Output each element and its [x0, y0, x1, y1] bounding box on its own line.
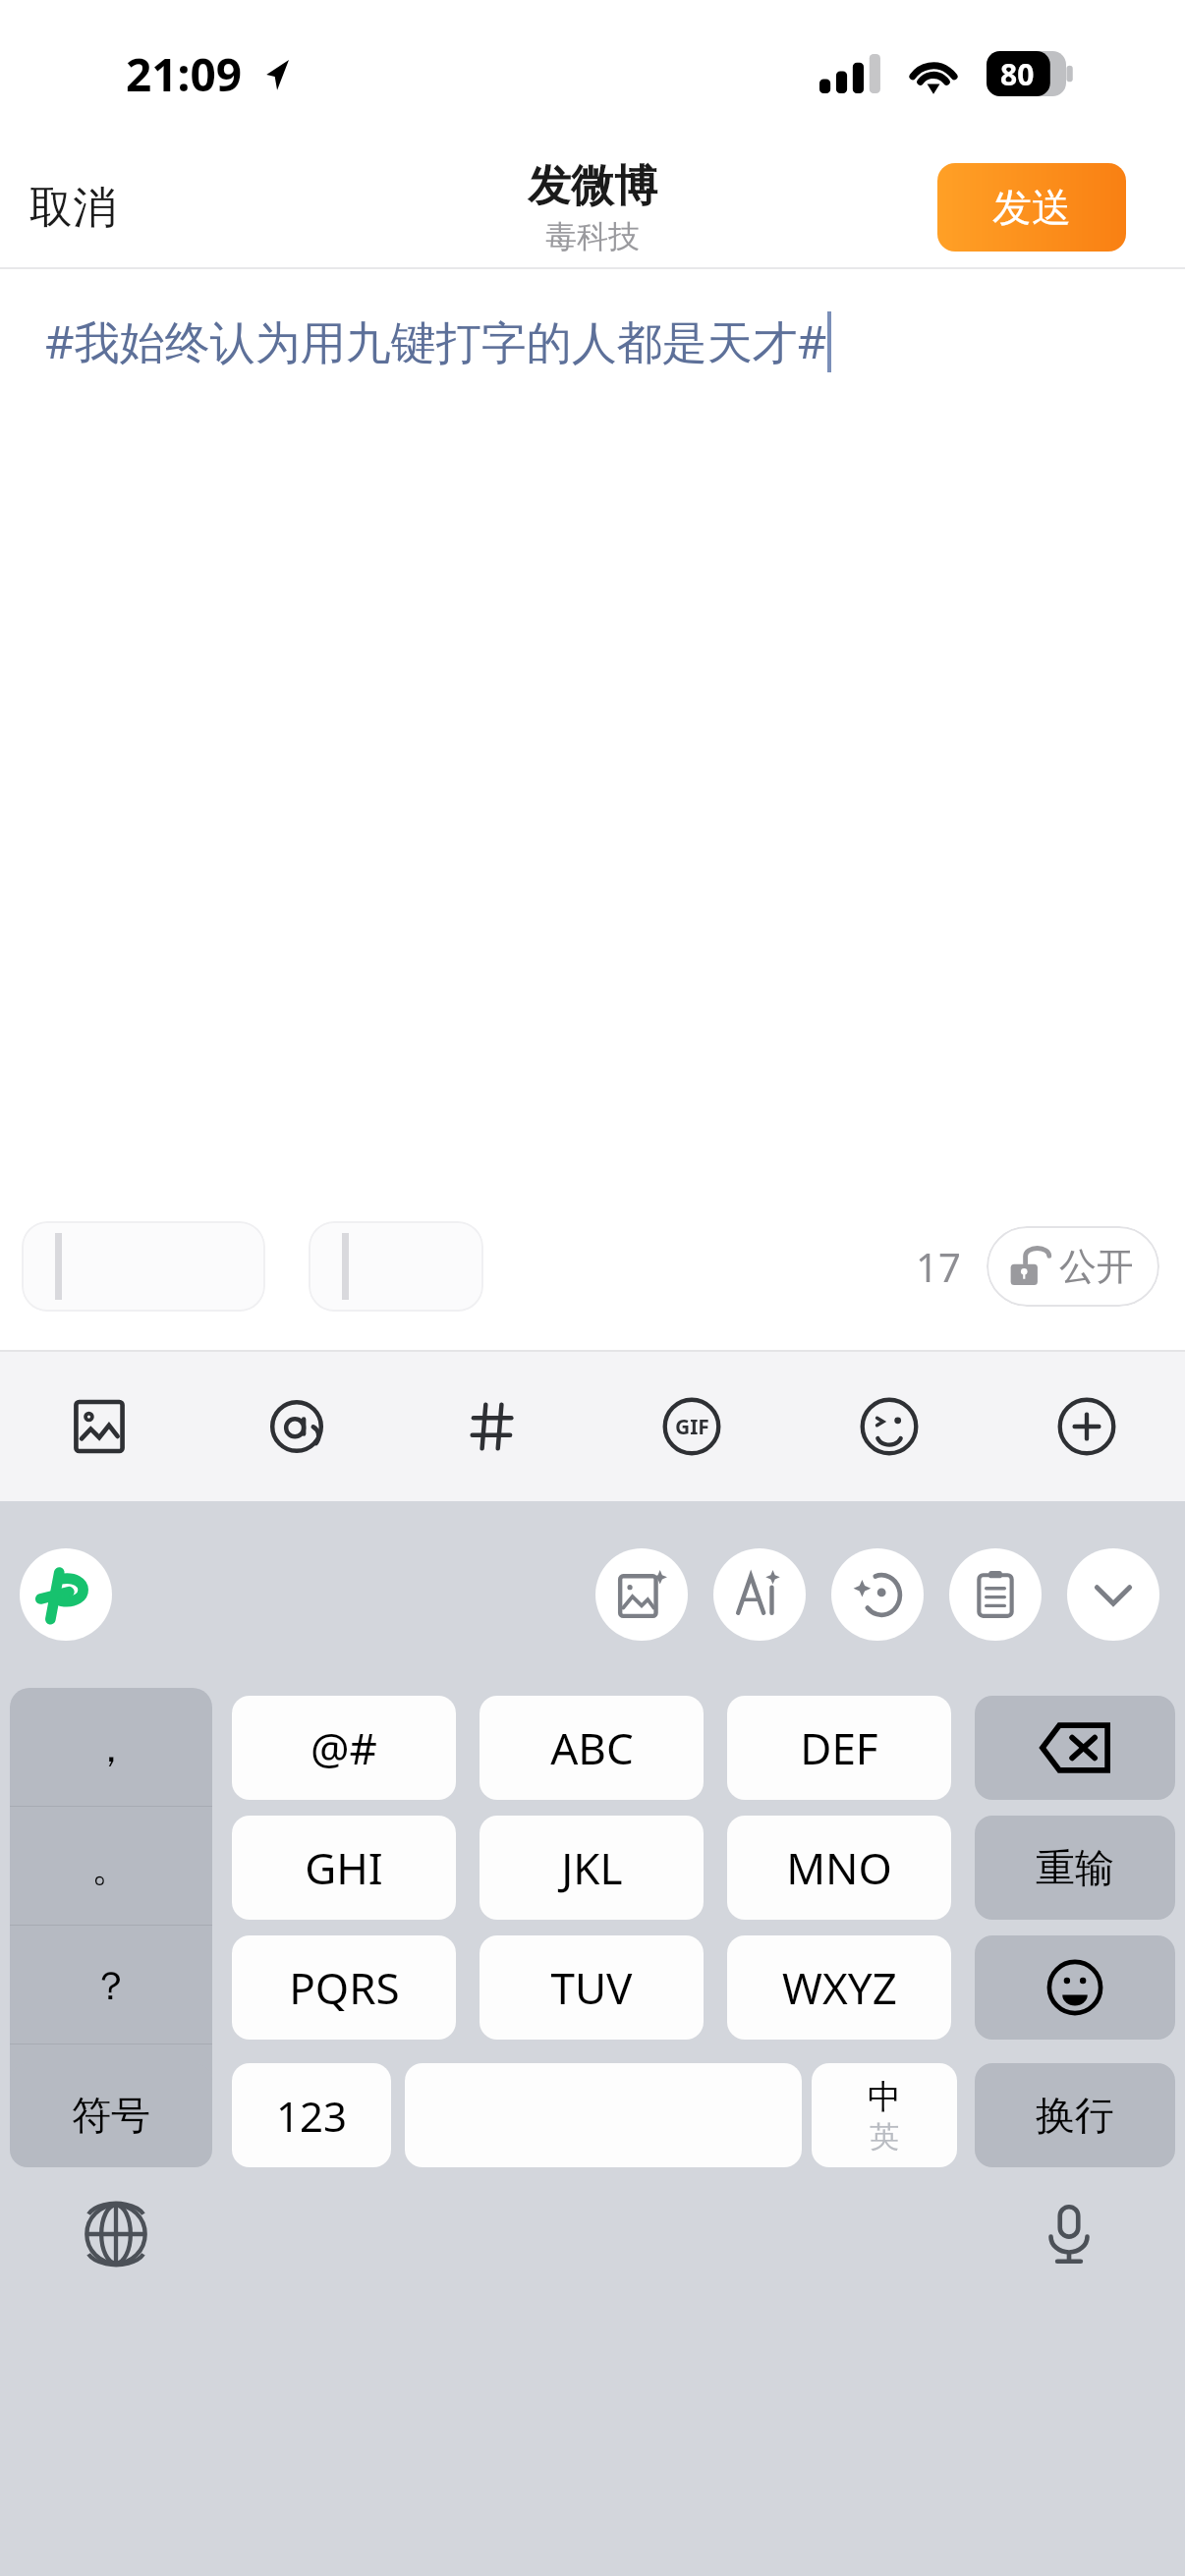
- staticText: 。: [91, 1842, 131, 1891]
- staticText: DEF: [800, 1718, 878, 1777]
- button[interactable]: Space: [405, 2063, 802, 2167]
- button[interactable]: Text AI: [713, 1548, 806, 1641]
- staticText: WXYZ: [782, 1958, 897, 2017]
- staticText: ，: [91, 1723, 131, 1772]
- button[interactable]: PQRS: [232, 1935, 456, 2040]
- button[interactable]: Avatar: [831, 1548, 924, 1641]
- staticText: GIF: [675, 1413, 709, 1441]
- button[interactable]: 发送: [937, 163, 1126, 252]
- button[interactable]: ？: [10, 1926, 212, 2044]
- staticText: JKL: [561, 1838, 623, 1897]
- button[interactable]: TUV: [480, 1935, 704, 2040]
- button[interactable]: GIF: [592, 1352, 790, 1501]
- button[interactable]: ！: [10, 2044, 212, 2163]
- staticText: 发微博: [528, 159, 657, 213]
- staticText: 80: [1000, 54, 1035, 94]
- button[interactable]: 取消: [0, 167, 140, 249]
- staticText: 换行: [1036, 2091, 1114, 2140]
- button[interactable]: ABC: [480, 1696, 704, 1800]
- staticText: 发送: [992, 183, 1071, 232]
- button[interactable]: 公开: [987, 1226, 1159, 1307]
- staticText: 毒科技: [545, 217, 640, 256]
- button[interactable]: 换行: [975, 2063, 1175, 2167]
- button[interactable]: Collapse keyboard: [1067, 1548, 1159, 1641]
- button[interactable]: Emoji: [975, 1935, 1175, 2040]
- button[interactable]: 。: [10, 1807, 212, 1926]
- button[interactable]: Photo AI: [595, 1548, 688, 1641]
- button[interactable]: DEF: [727, 1696, 951, 1800]
- staticText: #我始终认为用九键打字的人都是天才#: [45, 310, 827, 372]
- staticText: PQRS: [289, 1958, 400, 2017]
- staticText: 123: [276, 2088, 348, 2144]
- button[interactable]: 123: [232, 2063, 391, 2167]
- staticText: @#: [310, 1718, 377, 1777]
- staticText: TUV: [550, 1958, 633, 2017]
- staticText: ABC: [550, 1718, 634, 1777]
- button[interactable]: Switch language: [77, 2195, 155, 2273]
- button[interactable]: Mention: [197, 1352, 395, 1501]
- button[interactable]: Input method logo: [20, 1548, 112, 1641]
- button[interactable]: 符号: [10, 2063, 212, 2167]
- staticText: 取消: [29, 181, 116, 235]
- staticText: 公开: [1059, 1243, 1134, 1290]
- staticText: GHI: [305, 1838, 383, 1897]
- staticText: 重输: [1036, 1843, 1114, 1892]
- button[interactable]: Emoji: [790, 1352, 987, 1501]
- button[interactable]: 重输: [975, 1816, 1175, 1920]
- staticText: 17: [916, 1240, 961, 1293]
- button[interactable]: ，: [10, 1688, 212, 1807]
- button[interactable]: More: [987, 1352, 1185, 1501]
- button[interactable]: Topic: [395, 1352, 592, 1501]
- staticText: MNO: [786, 1838, 892, 1897]
- staticText: 英: [870, 2118, 899, 2156]
- button[interactable]: @#: [232, 1696, 456, 1800]
- staticText: ！: [91, 2080, 131, 2129]
- button[interactable]: JKL: [480, 1816, 704, 1920]
- button[interactable]: GHI: [232, 1816, 456, 1920]
- button[interactable]: Backspace: [975, 1696, 1175, 1800]
- button[interactable]: Voice input: [1030, 2195, 1108, 2273]
- button[interactable]: Clipboard: [949, 1548, 1042, 1641]
- button[interactable]: Image: [0, 1352, 197, 1501]
- staticText: ？: [91, 1961, 131, 2010]
- staticText: 符号: [72, 2091, 150, 2140]
- button[interactable]: WXYZ: [727, 1935, 951, 2040]
- staticText: 中: [868, 2076, 901, 2118]
- staticText: 21:09: [126, 43, 243, 105]
- button[interactable]: MNO: [727, 1816, 951, 1920]
- button[interactable]: Chinese English toggle: [812, 2063, 957, 2167]
